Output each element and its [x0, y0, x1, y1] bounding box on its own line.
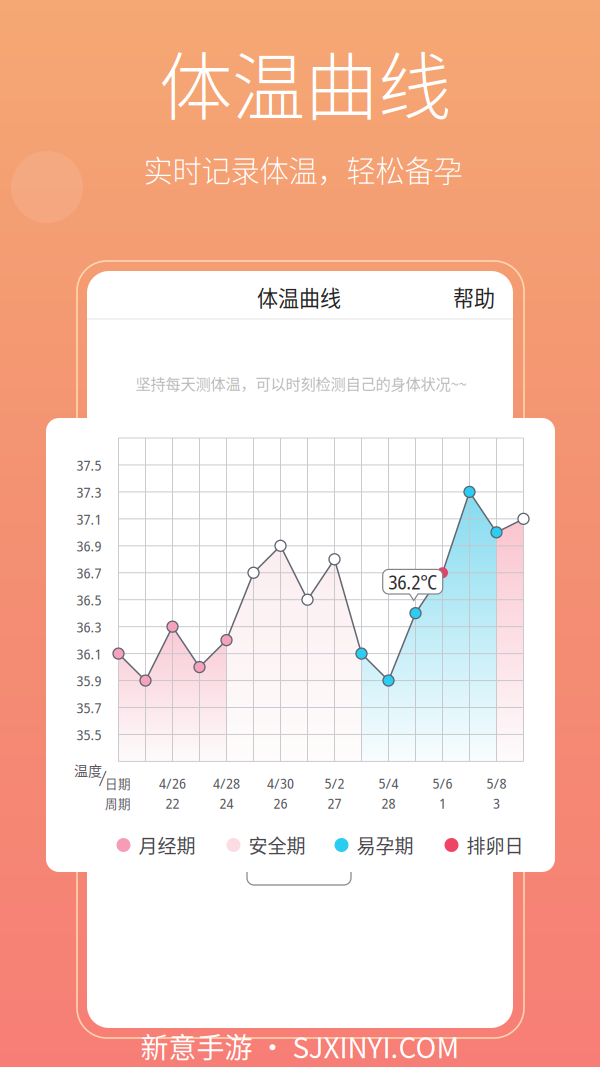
- button[interactable]: 安全期: [226, 825, 305, 865]
- staticText: 37.3: [76, 482, 101, 502]
- staticText: 36.7: [76, 563, 101, 583]
- staticText: 4/30: [267, 773, 294, 793]
- button[interactable]: 排卵日: [444, 825, 523, 865]
- staticText: 体温曲线: [159, 29, 451, 135]
- staticText: 体温曲线: [257, 282, 341, 312]
- staticText: 36.3: [76, 616, 101, 637]
- staticText: 4/26: [159, 773, 186, 793]
- staticText: 坚持每天测体温，可以时刻检测自己的身体状况~~: [135, 372, 466, 394]
- staticText: 5/4: [378, 773, 398, 793]
- staticText: 易孕期: [356, 831, 413, 859]
- staticText: 37.1: [76, 509, 101, 529]
- staticText: 5/2: [324, 773, 344, 793]
- staticText: 日期: [105, 774, 131, 792]
- staticText: 1: [439, 793, 446, 813]
- staticText: 22: [165, 793, 179, 813]
- staticText: 5/6: [432, 773, 452, 793]
- staticText: 4/28: [213, 773, 240, 793]
- staticText: 35.9: [76, 670, 101, 691]
- staticText: 安全期: [248, 831, 305, 859]
- staticText: 周期: [105, 794, 131, 812]
- staticText: 新意手游 • SJXINYI.COM: [140, 1026, 459, 1066]
- button[interactable]: 帮助: [442, 275, 506, 319]
- staticText: 3: [493, 793, 500, 813]
- staticText: 24: [219, 793, 233, 813]
- staticText: 36.5: [76, 589, 101, 610]
- staticText: 温度: [74, 760, 102, 780]
- button[interactable]: 易孕期: [334, 825, 413, 865]
- staticText: 帮助: [453, 282, 495, 312]
- button[interactable]: 月经期: [116, 825, 195, 865]
- staticText: 37.5: [76, 455, 101, 475]
- staticText: 5/8: [486, 773, 506, 793]
- staticText: 月经期: [138, 831, 195, 859]
- staticText: 36.2℃: [388, 568, 437, 595]
- staticText: 27: [327, 793, 341, 813]
- staticText: 36.9: [76, 536, 101, 556]
- staticText: 26: [273, 793, 287, 813]
- staticText: 35.7: [76, 697, 101, 718]
- staticText: 28: [381, 793, 395, 813]
- staticText: 实时记录体温，轻松备孕: [143, 148, 462, 190]
- staticText: 35.5: [76, 724, 101, 745]
- staticText: 36.1: [76, 643, 101, 664]
- staticText: 排卵日: [466, 831, 523, 859]
